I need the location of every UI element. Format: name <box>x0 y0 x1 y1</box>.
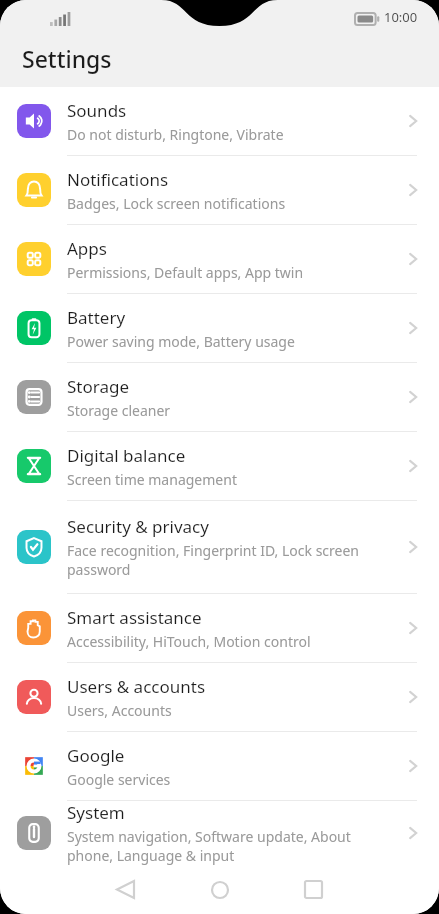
staticText: Settings <box>22 43 112 74</box>
button[interactable]: Recent apps <box>283 865 343 914</box>
staticText: Users & accounts <box>67 675 206 698</box>
button[interactable]: Back <box>95 865 155 914</box>
staticText: Google services <box>67 770 171 789</box>
staticText: Battery <box>67 306 126 329</box>
staticText: 10:00 <box>384 8 418 26</box>
button[interactable]: Smart assistance <box>0 594 439 662</box>
button[interactable]: Sounds <box>0 87 439 155</box>
staticText: Accessibility, HiTouch, Motion control <box>67 632 311 651</box>
button[interactable]: Apps <box>0 225 439 293</box>
staticText: Do not disturb, Ringtone, Vibrate <box>67 125 284 144</box>
staticText: System navigation, Software update, Abou… <box>67 827 351 865</box>
staticText: Screen time management <box>67 470 237 489</box>
button[interactable]: Users & accounts <box>0 663 439 731</box>
staticText: Power saving mode, Battery usage <box>67 332 295 351</box>
button[interactable]: Digital balance <box>0 432 439 500</box>
button[interactable]: Notifications <box>0 156 439 224</box>
staticText: Google <box>67 744 125 767</box>
button[interactable]: Battery <box>0 294 439 362</box>
staticText: Smart assistance <box>67 606 202 629</box>
button[interactable]: Google <box>0 732 439 800</box>
button[interactable]: Storage <box>0 363 439 431</box>
button[interactable]: Home <box>190 865 250 914</box>
button[interactable]: System <box>0 801 439 865</box>
staticText: Storage cleaner <box>67 401 171 420</box>
staticText: Permissions, Default apps, App twin <box>67 263 304 282</box>
staticText: Notifications <box>67 168 169 191</box>
staticText: System <box>67 801 125 824</box>
staticText: Apps <box>67 237 107 260</box>
button[interactable]: Security & privacy <box>0 501 439 593</box>
staticText: Storage <box>67 375 130 398</box>
staticText: Security & privacy <box>67 515 209 538</box>
staticText: Users, Accounts <box>67 701 172 720</box>
staticText: Digital balance <box>67 444 186 467</box>
staticText: Sounds <box>67 99 127 122</box>
staticText: Badges, Lock screen notifications <box>67 194 286 213</box>
staticText: Face recognition, Fingerprint ID, Lock s… <box>67 541 359 579</box>
